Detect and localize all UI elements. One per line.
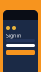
staticText: Sign in [6, 32, 21, 39]
button[interactable] [6, 50, 35, 55]
